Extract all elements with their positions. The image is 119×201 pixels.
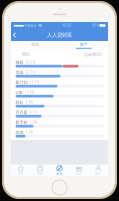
staticText: 10:25 bbox=[62, 24, 71, 27]
staticText: 薪计划 bbox=[15, 80, 27, 85]
staticText: U享 bbox=[15, 90, 22, 95]
staticText: 36.2% bbox=[26, 61, 35, 64]
staticText: 新手标 bbox=[15, 120, 27, 125]
staticText: 85% bbox=[92, 24, 98, 27]
staticText: 月月盈 bbox=[15, 110, 27, 115]
staticText: 散标 bbox=[15, 60, 23, 65]
staticText: 活动 bbox=[76, 172, 82, 175]
staticText: 优选 bbox=[15, 70, 23, 75]
staticText: 首页 bbox=[18, 172, 24, 175]
button[interactable]: Back bbox=[11, 29, 20, 41]
staticText: 发现 bbox=[56, 172, 62, 175]
button[interactable]: 我的 bbox=[89, 164, 108, 176]
staticText: 项目 bbox=[22, 52, 30, 57]
button[interactable]: 资产 bbox=[59, 41, 108, 49]
staticText: 人人贷财富 bbox=[47, 32, 72, 38]
staticText: 资产 bbox=[80, 42, 88, 47]
staticText: ●●●●● bbox=[14, 24, 24, 27]
staticText: 1.3% bbox=[26, 131, 33, 134]
staticText: 22.1% bbox=[26, 71, 35, 74]
staticText: 我的 bbox=[95, 172, 101, 175]
button[interactable]: 收益 bbox=[11, 41, 59, 49]
button[interactable]: 理财 bbox=[30, 164, 50, 176]
staticText: 理财 bbox=[37, 172, 43, 175]
staticText: 13.7% bbox=[30, 81, 39, 84]
staticText: 11.4% bbox=[25, 91, 34, 94]
staticText: 收益 bbox=[31, 42, 39, 47]
staticText: 中国移动 bbox=[24, 24, 37, 27]
staticText: 8.9% bbox=[26, 101, 33, 104]
button[interactable]: 首页 bbox=[11, 164, 30, 176]
staticText: 其他 bbox=[15, 130, 23, 135]
staticText: 总金额(元) bbox=[84, 52, 102, 57]
button[interactable]: 发现 bbox=[50, 164, 69, 176]
staticText: 4.1% bbox=[30, 111, 37, 114]
button[interactable]: 活动 bbox=[69, 164, 89, 176]
staticText: 彩虹 bbox=[15, 100, 23, 105]
staticText: 2.3% bbox=[30, 121, 37, 124]
